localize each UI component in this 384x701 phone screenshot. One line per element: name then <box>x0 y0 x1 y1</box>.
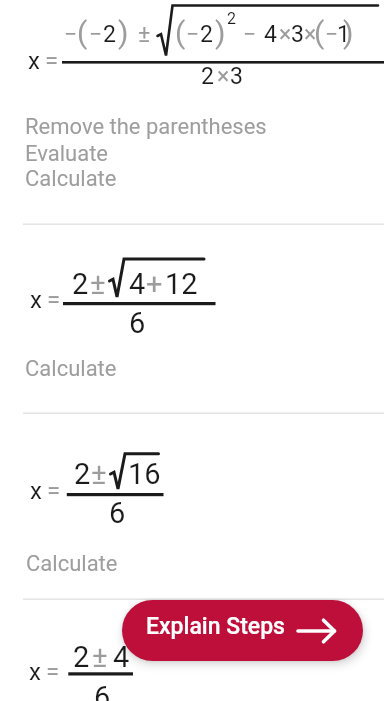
button[interactable]: Evaluate <box>25 141 108 167</box>
staticText: 2 <box>227 9 236 28</box>
staticText: x <box>29 658 41 686</box>
staticText: Calculate <box>25 166 117 192</box>
button[interactable]: Remove the parentheses <box>25 114 267 140</box>
staticText: − <box>325 21 339 48</box>
staticText: ) <box>118 15 129 50</box>
staticText: ( <box>314 15 325 50</box>
staticText: ) <box>215 15 226 50</box>
staticText: 4 <box>113 640 130 674</box>
staticText: − <box>186 21 200 48</box>
button[interactable]: Calculate <box>25 356 117 382</box>
staticText: 2 <box>74 457 91 491</box>
staticText: ( <box>175 15 186 50</box>
staticText: ( <box>77 15 88 50</box>
staticText: ± <box>91 457 107 491</box>
staticText: ± <box>92 640 108 674</box>
staticText: 2 <box>200 21 213 48</box>
button[interactable]: Calculate <box>26 551 118 577</box>
staticText: Remove the parentheses <box>25 114 267 140</box>
staticText: 6 <box>94 680 111 701</box>
staticText: 3 <box>230 63 243 90</box>
button[interactable]: Explain Steps <box>122 600 363 661</box>
staticText: 2 <box>72 267 89 301</box>
staticText: Calculate <box>25 356 117 382</box>
staticText: = <box>47 286 61 314</box>
staticText: 4 <box>264 21 277 48</box>
staticText: 2 <box>73 640 90 674</box>
staticText: + <box>146 267 163 301</box>
staticText: x <box>28 47 40 75</box>
staticText: 2 <box>201 63 214 90</box>
staticText: ) <box>343 15 354 50</box>
staticText: 2 <box>103 21 116 48</box>
staticText: x <box>30 286 42 314</box>
staticText: − <box>243 21 257 48</box>
staticText: 6 <box>109 496 126 530</box>
staticText: × <box>279 21 292 48</box>
staticText: 6 <box>129 306 146 340</box>
staticText: 3 <box>291 21 304 48</box>
staticText: ± <box>138 21 151 48</box>
staticText: 16 <box>128 457 161 491</box>
staticText: 1 <box>337 21 350 48</box>
staticText: x <box>30 477 42 505</box>
staticText: ± <box>90 267 106 301</box>
staticText: = <box>46 658 60 686</box>
staticText: = <box>47 477 61 505</box>
staticText: − <box>64 21 78 48</box>
button[interactable]: Calculate <box>25 166 117 192</box>
staticText: − <box>89 21 103 48</box>
staticText: Evaluate <box>25 141 108 167</box>
staticText: = <box>45 47 59 75</box>
staticText: 4 <box>129 267 146 301</box>
staticText: × <box>304 21 317 48</box>
staticText: Explain Steps <box>146 613 285 640</box>
staticText: 12 <box>165 267 198 301</box>
staticText: Calculate <box>26 551 118 577</box>
staticText: × <box>217 63 230 90</box>
